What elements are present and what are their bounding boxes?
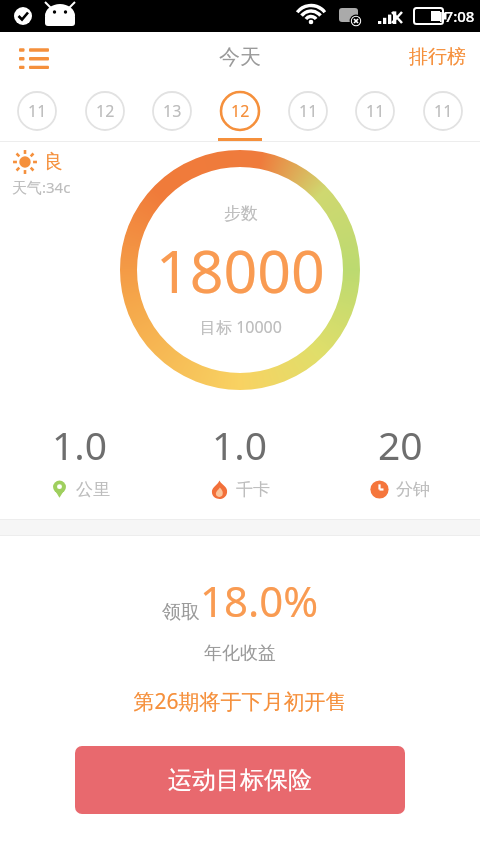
staticText: 11 bbox=[299, 100, 318, 122]
staticText: 11 bbox=[366, 100, 385, 122]
staticText: 分钟 bbox=[396, 479, 430, 500]
staticText: 公里 bbox=[76, 479, 110, 500]
staticText: 1.0 bbox=[52, 418, 108, 471]
button[interactable]: 11 bbox=[276, 81, 340, 141]
staticText: 年化收益 bbox=[204, 642, 276, 665]
staticText: 领取 bbox=[162, 600, 200, 624]
button[interactable]: 12 bbox=[73, 81, 137, 141]
staticText: 17:08 bbox=[436, 6, 475, 26]
staticText: 排行榜 bbox=[409, 45, 466, 69]
button[interactable]: 13 bbox=[140, 81, 204, 141]
button[interactable]: 20 bbox=[320, 404, 480, 519]
button[interactable]: 11 bbox=[5, 81, 69, 141]
button[interactable]: 11 bbox=[343, 81, 407, 141]
button[interactable]: 排行榜 bbox=[395, 37, 480, 77]
staticText: 目标 10000 bbox=[200, 316, 282, 338]
button[interactable]: 12 bbox=[208, 81, 272, 141]
staticText: 11 bbox=[434, 100, 453, 122]
button[interactable]: 11 bbox=[411, 81, 475, 141]
staticText: 运动目标保险 bbox=[168, 765, 312, 795]
staticText: 12 bbox=[231, 100, 250, 122]
button[interactable]: 1.0 bbox=[0, 404, 160, 519]
staticText: 天气:34c bbox=[12, 177, 71, 197]
staticText: 18.0% bbox=[200, 572, 319, 629]
button[interactable]: 1.0 bbox=[160, 404, 320, 519]
staticText: 千卡 bbox=[236, 479, 270, 500]
staticText: 11 bbox=[28, 100, 47, 122]
button[interactable]: 今天 bbox=[205, 38, 275, 76]
staticText: 13 bbox=[163, 100, 182, 122]
staticText: 1.0 bbox=[212, 418, 268, 471]
button[interactable]: Menu bbox=[10, 33, 58, 81]
staticText: 18000 bbox=[156, 230, 325, 310]
staticText: 今天 bbox=[219, 44, 261, 70]
staticText: 12 bbox=[96, 100, 115, 122]
staticText: 步数 bbox=[224, 203, 258, 224]
button[interactable]: 领取 bbox=[154, 570, 327, 631]
button[interactable]: 运动目标保险 bbox=[75, 746, 405, 814]
staticText: 良 bbox=[44, 150, 63, 174]
staticText: 20 bbox=[378, 418, 423, 471]
staticText: 第26期将于下月初开售 bbox=[133, 687, 347, 716]
